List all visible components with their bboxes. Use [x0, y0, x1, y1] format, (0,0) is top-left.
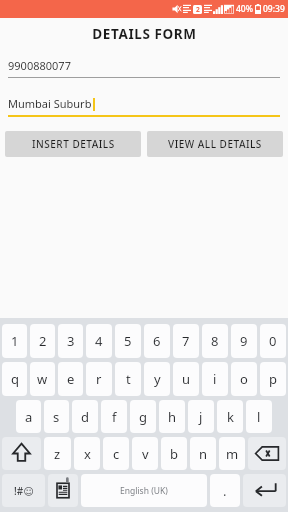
staticText: r — [96, 370, 102, 388]
button[interactable]: 5 — [115, 324, 141, 358]
button[interactable]: g — [130, 400, 156, 433]
staticText: d — [81, 408, 89, 426]
button[interactable]: . — [210, 474, 240, 507]
staticText: . — [223, 482, 227, 500]
staticText: 4 — [95, 332, 103, 350]
staticText: h — [168, 408, 177, 426]
staticText: 9 — [240, 332, 248, 350]
button[interactable]: d — [72, 400, 98, 433]
staticText: x — [84, 445, 91, 463]
staticText: u — [182, 370, 191, 388]
staticText: 6 — [153, 332, 161, 350]
button[interactable]: 9 — [231, 324, 257, 358]
button[interactable]: h — [159, 400, 185, 433]
button[interactable]: u — [173, 362, 199, 396]
button[interactable]: 0 — [260, 324, 286, 358]
button[interactable]: 8 — [202, 324, 228, 358]
button[interactable]: l — [246, 400, 272, 433]
staticText: DETAILS FORM — [92, 25, 197, 43]
button[interactable]: 6 — [144, 324, 170, 358]
button[interactable]: t — [115, 362, 141, 396]
staticText: 40% — [236, 3, 253, 15]
staticText: 2 — [196, 5, 200, 14]
staticText: s — [53, 408, 60, 426]
staticText: 09:39 — [263, 3, 285, 15]
staticText: 3 — [67, 332, 75, 350]
button[interactable]: Settings — [48, 474, 78, 507]
staticText: j — [199, 408, 203, 426]
button[interactable]: Shift — [2, 437, 41, 470]
button[interactable]: m — [219, 437, 245, 470]
staticText: i — [213, 370, 217, 388]
staticText: l — [257, 408, 261, 426]
button[interactable]: INSERT DETAILS — [5, 131, 141, 157]
staticText: 5 — [124, 332, 132, 350]
button[interactable]: v — [132, 437, 158, 470]
button[interactable]: c — [103, 437, 129, 470]
button[interactable]: q — [2, 362, 27, 396]
button[interactable]: f — [101, 400, 127, 433]
button[interactable]: 1 — [2, 324, 27, 358]
staticText: 7 — [182, 332, 190, 350]
button[interactable]: z — [44, 437, 71, 470]
staticText: m — [226, 445, 239, 463]
staticText: e — [67, 370, 75, 388]
button[interactable]: 3 — [58, 324, 83, 358]
staticText: q — [11, 370, 19, 388]
button[interactable]: 4 — [86, 324, 112, 358]
staticText: !#☺ — [14, 484, 34, 498]
staticText: VIEW ALL DETAILS — [168, 137, 262, 151]
button[interactable]: i — [202, 362, 228, 396]
staticText: 0 — [269, 332, 277, 350]
staticText: k — [227, 408, 234, 426]
button[interactable]: o — [231, 362, 257, 396]
staticText: p — [269, 370, 277, 388]
button[interactable]: e — [58, 362, 83, 396]
staticText: z — [54, 445, 61, 463]
staticText: n — [199, 445, 208, 463]
staticText: y — [154, 370, 161, 388]
staticText: a — [25, 408, 33, 426]
button[interactable]: !#☺ — [2, 474, 45, 507]
button[interactable]: k — [217, 400, 243, 433]
button[interactable]: n — [190, 437, 216, 470]
staticText: t — [126, 370, 131, 388]
button[interactable]: p — [260, 362, 286, 396]
staticText: w — [37, 370, 48, 388]
button[interactable]: Backspace — [248, 437, 286, 470]
staticText: b — [170, 445, 178, 463]
button[interactable]: r — [86, 362, 112, 396]
staticText: 8 — [211, 332, 219, 350]
button[interactable]: 7 — [173, 324, 199, 358]
staticText: Mumbai Suburb — [8, 96, 92, 111]
staticText: c — [113, 445, 120, 463]
staticText: 1 — [11, 332, 19, 350]
staticText: f — [112, 408, 117, 426]
button[interactable]: x — [74, 437, 100, 470]
button[interactable]: y — [144, 362, 170, 396]
staticText: v — [142, 445, 149, 463]
staticText: 9900880077 — [8, 58, 71, 73]
button[interactable]: VIEW ALL DETAILS — [147, 131, 283, 157]
button[interactable]: English (UK) — [81, 474, 207, 507]
button[interactable]: Enter — [243, 474, 286, 507]
button[interactable]: b — [161, 437, 187, 470]
button[interactable]: 2 — [30, 324, 55, 358]
staticText: 2 — [39, 332, 47, 350]
staticText: INSERT DETAILS — [32, 137, 115, 151]
button[interactable]: a — [16, 400, 41, 433]
button[interactable]: w — [30, 362, 55, 396]
button[interactable]: j — [188, 400, 214, 433]
staticText: g — [139, 408, 147, 426]
staticText: English (UK) — [120, 485, 168, 497]
button[interactable]: s — [44, 400, 69, 433]
staticText: o — [240, 370, 248, 388]
